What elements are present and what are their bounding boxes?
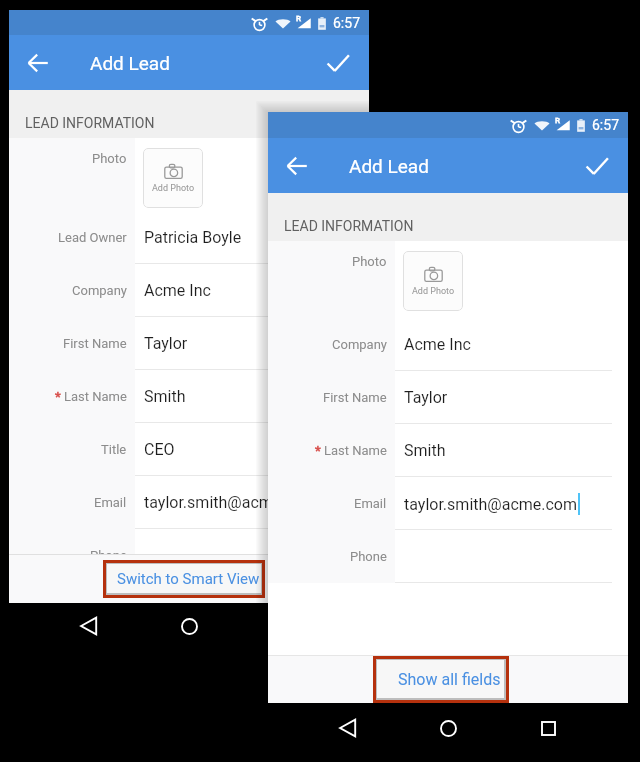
staticText: Phone bbox=[90, 548, 127, 563]
staticText: First Name bbox=[323, 390, 387, 405]
button[interactable]: Navigate up bbox=[15, 40, 61, 86]
staticText: Taylor bbox=[404, 388, 448, 407]
staticText: LEAD INFORMATION bbox=[284, 218, 414, 234]
staticText: Add Lead bbox=[349, 155, 429, 177]
staticText: Smith bbox=[404, 441, 446, 460]
button[interactable]: Switch to Smart View bbox=[106, 563, 263, 595]
button[interactable]: Company bbox=[9, 264, 369, 317]
button[interactable]: Phone bbox=[268, 530, 628, 583]
button[interactable]: Email bbox=[268, 477, 628, 530]
staticText: Add Photo bbox=[412, 286, 455, 297]
button[interactable]: Lead Owner bbox=[9, 211, 369, 264]
button[interactable]: Home bbox=[169, 606, 209, 646]
staticText: * bbox=[55, 389, 61, 404]
staticText: Photo bbox=[352, 254, 387, 269]
staticText: LEAD INFORMATION bbox=[25, 115, 155, 131]
button[interactable]: Title bbox=[9, 423, 369, 476]
staticText: taylor.smith@acme.com bbox=[144, 493, 318, 512]
button[interactable]: Recent apps bbox=[528, 708, 568, 748]
staticText: Photo bbox=[92, 151, 127, 166]
staticText: Acme Inc bbox=[404, 335, 471, 354]
button[interactable]: Show all fields bbox=[376, 659, 506, 700]
button[interactable]: Save bbox=[574, 143, 620, 189]
staticText: 6:57 bbox=[333, 15, 360, 31]
staticText: Email bbox=[94, 495, 127, 510]
button[interactable]: Navigate up bbox=[274, 143, 320, 189]
staticText: Email bbox=[354, 496, 387, 511]
button[interactable]: * bbox=[268, 424, 628, 477]
staticText: Acme Inc bbox=[144, 281, 211, 300]
staticText: Last Name bbox=[64, 389, 127, 404]
staticText: Patricia Boyle bbox=[144, 228, 242, 247]
staticText: Last Name bbox=[324, 443, 387, 458]
staticText: Add Photo bbox=[152, 183, 195, 194]
button[interactable]: First Name bbox=[9, 317, 369, 370]
staticText: First Name bbox=[63, 336, 127, 351]
staticText: Company bbox=[72, 283, 127, 298]
button[interactable]: Save bbox=[315, 40, 361, 86]
button[interactable]: Add Photo bbox=[403, 251, 463, 311]
staticText: Show all fields bbox=[398, 670, 501, 689]
staticText: Lead Owner bbox=[58, 230, 127, 245]
button[interactable]: First Name bbox=[268, 371, 628, 424]
staticText: * bbox=[315, 443, 321, 458]
button[interactable]: * bbox=[9, 370, 369, 423]
staticText: Smith bbox=[144, 387, 186, 406]
staticText: Company bbox=[332, 337, 387, 352]
staticText: Add Lead bbox=[90, 52, 170, 74]
staticText: Switch to Smart View bbox=[117, 570, 260, 588]
button[interactable]: Email bbox=[9, 476, 369, 529]
button[interactable]: Home bbox=[428, 708, 468, 748]
staticText: taylor.smith@acme.com bbox=[404, 495, 578, 514]
staticText: Title bbox=[101, 442, 127, 457]
button[interactable]: Phone bbox=[9, 529, 369, 582]
staticText: Phone bbox=[350, 549, 387, 564]
button[interactable]: Back bbox=[328, 708, 368, 748]
button[interactable]: Company bbox=[268, 318, 628, 371]
button[interactable]: Add Photo bbox=[143, 148, 203, 208]
staticText: 6:57 bbox=[592, 117, 619, 133]
staticText: Taylor bbox=[144, 334, 188, 353]
button[interactable]: Back bbox=[69, 606, 109, 646]
staticText: R bbox=[555, 116, 560, 125]
staticText: R bbox=[296, 14, 301, 23]
staticText: CEO bbox=[144, 440, 175, 459]
